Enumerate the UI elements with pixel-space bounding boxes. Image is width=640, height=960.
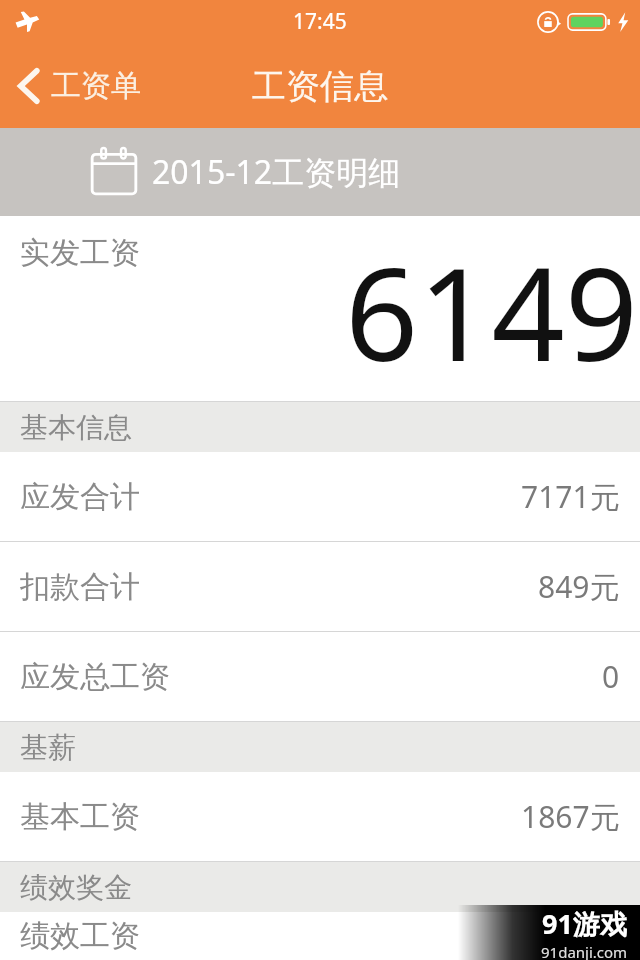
staticText: 工资单 — [51, 67, 141, 105]
button[interactable]: 基本工资 — [0, 772, 640, 861]
staticText: 2015-12工资明细 — [152, 150, 401, 194]
staticText: 绩效工资 — [20, 917, 140, 955]
staticText: 工资信息 — [252, 65, 388, 108]
button[interactable]: 绩效工资 — [0, 912, 640, 960]
button[interactable]: 应发合计 — [0, 452, 640, 541]
staticText: 应发总工资 — [20, 658, 170, 696]
button[interactable]: 应发总工资 — [0, 632, 640, 721]
staticText: 17:45 — [293, 7, 347, 36]
button[interactable]: 扣款合计 — [0, 542, 640, 631]
staticText: 基本信息 — [20, 410, 132, 445]
staticText: 6149 — [345, 224, 638, 398]
staticText: 849元 — [538, 566, 620, 607]
staticText: 绩效奖金 — [20, 870, 132, 905]
staticText: 91游戏 — [542, 905, 627, 942]
staticText: 基薪 — [20, 730, 76, 765]
staticText: 1867元 — [521, 796, 620, 837]
staticText: 应发合计 — [20, 478, 140, 516]
button[interactable]: 2015-12工资明细 — [0, 128, 640, 216]
staticText: 扣款合计 — [20, 568, 140, 606]
button[interactable]: 工资单 — [0, 58, 153, 114]
staticText: 0 — [602, 656, 620, 697]
staticText: 7171元 — [521, 476, 620, 517]
button[interactable]: 实发工资 — [0, 216, 640, 402]
staticText: 实发工资 — [20, 234, 140, 272]
staticText: 基本工资 — [20, 798, 140, 836]
staticText: 91danji.com — [541, 942, 628, 960]
